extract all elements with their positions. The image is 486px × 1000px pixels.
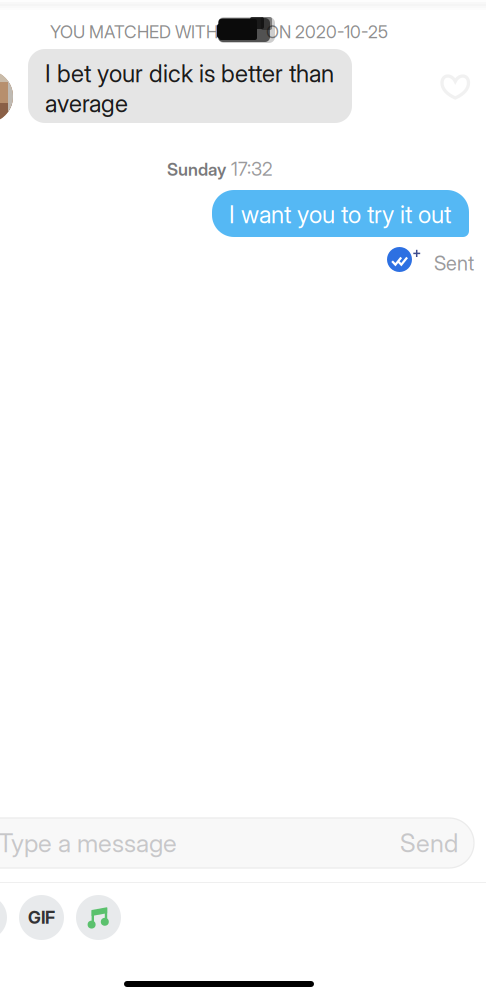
staticText: Type a message [0,828,177,858]
staticText: I want you to try it out [229,200,451,229]
staticText: average [45,89,128,118]
button[interactable]: GIF [19,895,64,940]
button[interactable]: Like message [431,65,479,109]
staticText: Sent [434,251,474,275]
staticText: 17:32 [231,158,272,180]
staticText: GIF [28,907,55,928]
button[interactable]: Stickers [0,895,7,940]
staticText: I bet your dick is better than [45,59,334,88]
staticText: YOU MATCHED WITH ON 2020-10-25 [50,21,388,42]
button[interactable]: Type a message [0,818,474,868]
staticText: Sunday [167,159,226,180]
staticText: Send [400,828,458,858]
button[interactable]: Send a song [76,895,121,940]
